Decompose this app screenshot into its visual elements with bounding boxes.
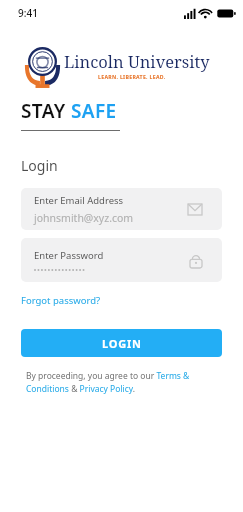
staticText: LEARN. LIBERATE. LEAD. [98,73,166,80]
staticText: Enter Email Address [34,194,124,207]
staticText: 9:41 [18,6,38,20]
staticText: LOGIN [102,336,142,351]
staticText: Login [21,156,58,175]
button[interactable]: LOGIN [21,329,222,357]
button[interactable]: Forgot password? [21,294,101,307]
button[interactable]: Enter Email Address [21,188,222,230]
button[interactable]: Enter Password [21,238,222,282]
staticText: Lincoln University [64,50,210,72]
staticText: johnsmith@xyz.com [34,211,134,225]
button[interactable]: By proceeding, you agree to our Terms & … [26,370,217,395]
staticText: Enter Password [34,249,104,262]
staticText: STAY SAFE [21,98,117,124]
